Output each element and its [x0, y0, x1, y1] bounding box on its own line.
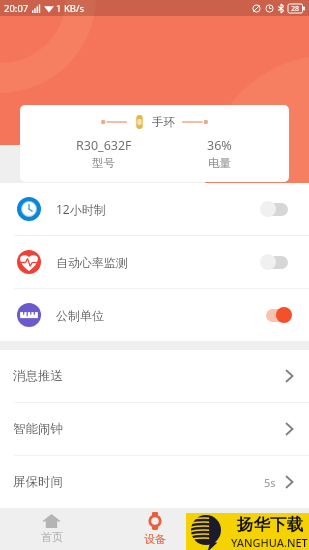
staticText: R30_632F	[76, 137, 132, 154]
staticText: 电量	[208, 156, 231, 170]
button[interactable]: 消息推送	[0, 350, 309, 402]
staticText: 36%	[207, 137, 232, 154]
staticText: 20:07	[4, 2, 29, 15]
staticText: 屏保时间	[13, 474, 63, 490]
staticText: 手环	[152, 115, 175, 129]
button[interactable]: 12小时制	[0, 183, 309, 235]
button[interactable]: 设备	[103, 508, 206, 550]
staticText: 5s	[264, 475, 276, 490]
staticText: 智能闹钟	[13, 421, 63, 437]
staticText: 型号	[92, 156, 115, 170]
staticText: 自动心率监测	[56, 255, 128, 270]
staticText: 公制单位	[56, 308, 104, 323]
staticText: 扬华下载	[237, 514, 303, 535]
button[interactable]: 屏保时间	[0, 456, 309, 508]
button[interactable]: 首页	[0, 508, 103, 550]
button[interactable]: 自动心率监测	[0, 236, 309, 288]
button[interactable]: 公制单位	[0, 289, 309, 341]
staticText: YANGHUA.NET	[231, 535, 308, 550]
button[interactable]: 智能闹钟	[0, 403, 309, 455]
staticText: 首页	[41, 530, 63, 544]
staticText: 1 KB/s	[56, 2, 85, 15]
staticText: 设备	[144, 532, 166, 546]
staticText: 28	[291, 4, 300, 13]
staticText: 12小时制	[56, 201, 106, 217]
staticText: 消息推送	[13, 368, 63, 384]
